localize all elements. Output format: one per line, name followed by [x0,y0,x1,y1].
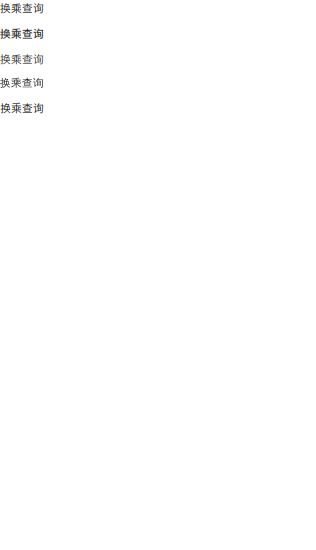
staticText: 换乘查询 [0,25,44,41]
staticText: 换乘查询 [0,51,44,66]
staticText: 换乘查询 [0,76,44,90]
staticText: 换乘查询 [0,0,44,15]
staticText: 换乘查询 [0,100,44,115]
